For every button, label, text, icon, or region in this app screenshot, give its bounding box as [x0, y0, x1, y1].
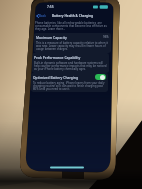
- staticText: 7:55: [47, 4, 54, 8]
- staticText: 96%: [103, 35, 109, 39]
- button[interactable]: Optimized Battery Charging: [33, 74, 106, 80]
- button[interactable]: Peak Performance Capability: [32, 53, 109, 73]
- button[interactable]: Back: [36, 13, 46, 19]
- staticText: Battery Health & Charging: [52, 14, 93, 18]
- staticText: Phone batteries, like all rechargeable b…: [35, 21, 110, 31]
- button[interactable]: Photo of iPhone showing Battery Health a…: [0, 0, 142, 189]
- staticText: Maximum Capacity: [36, 35, 67, 39]
- button[interactable]: Optimized Battery Charging toggle: [95, 74, 106, 80]
- staticText: Peak Performance Capability: [34, 55, 81, 59]
- staticText: To reduce battery aging, iPhone learns f…: [33, 81, 106, 91]
- staticText: Optimized Battery Charging: [33, 75, 78, 79]
- button[interactable]: Maximum Capacity: [34, 33, 111, 53]
- staticText: This is a measure of battery capacity re…: [36, 41, 109, 51]
- staticText: Back: [39, 14, 46, 18]
- staticText: Built-in dynamic software and hardware s…: [34, 61, 107, 71]
